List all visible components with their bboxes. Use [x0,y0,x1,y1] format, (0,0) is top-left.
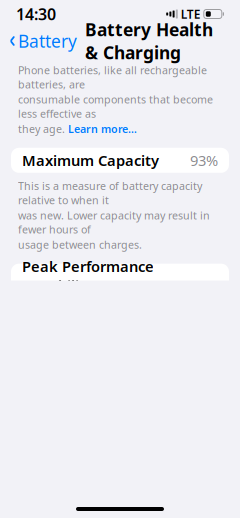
staticText: Maximum Capacity [22,151,159,170]
staticText: Phone batteries, like all rechargeable b… [18,63,207,91]
button[interactable]: Battery [9,25,77,56]
staticText: Learn more… [68,122,137,136]
button[interactable]: Peak Performance Capability [11,264,229,289]
staticText: 14:30 [16,3,56,25]
staticText: Peak Performance Capability [22,257,154,296]
staticText: consumable components that become less e… [18,92,213,121]
button[interactable]: Maximum Capacity [11,148,229,173]
button[interactable]: Learn more… [68,122,137,136]
staticText: LTE [181,6,201,22]
staticText: This is a measure of battery capacity re… [18,179,202,207]
staticText: was new. Lower capacity may result in fe… [18,208,210,236]
staticText: Battery Health & Charging [85,18,213,64]
staticText: they age. [18,122,65,136]
staticText: usage between charges. [18,237,142,252]
staticText: Battery [18,29,77,52]
staticText: 93% [190,151,218,170]
